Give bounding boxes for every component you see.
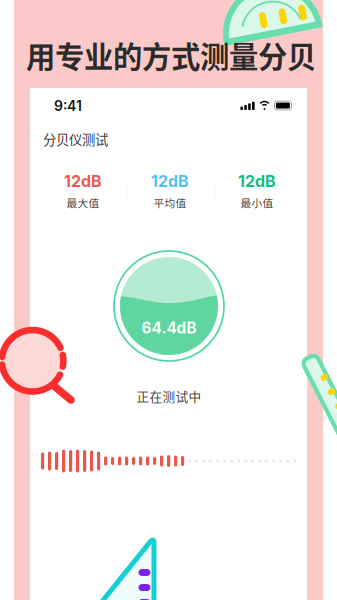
- staticText: 用专业的方式测量分贝: [26, 34, 316, 76]
- staticText: 正在测试中: [136, 387, 201, 405]
- staticText: 9:41: [54, 97, 82, 114]
- staticText: 64.4dB: [141, 319, 196, 337]
- staticText: 最小值: [240, 195, 273, 210]
- staticText: 12dB: [238, 172, 276, 191]
- staticText: 平均值: [153, 195, 186, 210]
- staticText: 12dB: [64, 172, 102, 191]
- staticText: 分贝仪测试: [43, 129, 108, 149]
- staticText: 最大值: [66, 195, 99, 210]
- staticText: 12dB: [151, 172, 189, 191]
